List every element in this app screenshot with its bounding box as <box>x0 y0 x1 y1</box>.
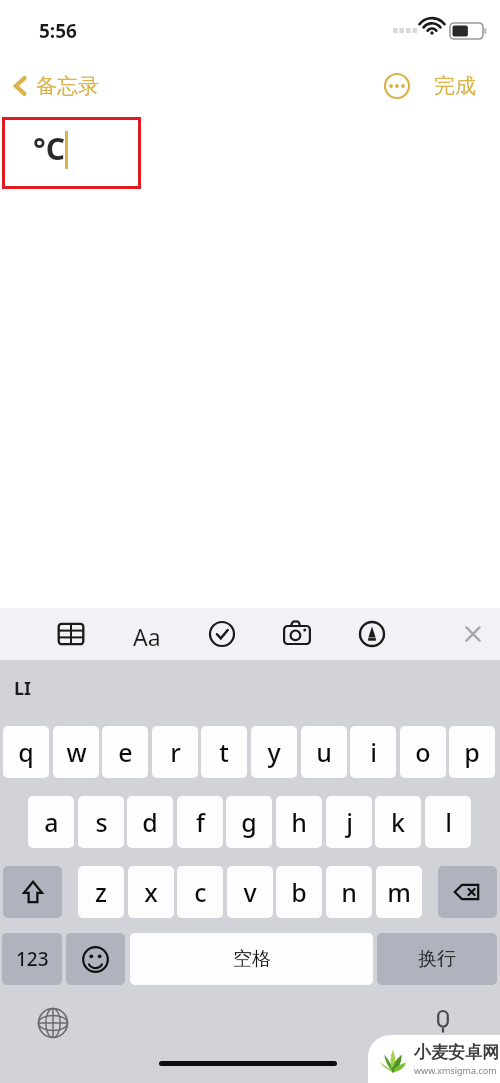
button[interactable]: Switch keyboard <box>31 1001 75 1045</box>
button[interactable]: a <box>28 796 74 848</box>
staticText: h <box>291 805 307 839</box>
staticText: 123 <box>16 946 49 972</box>
button[interactable]: k <box>375 796 421 848</box>
button[interactable]: More options <box>378 67 416 105</box>
button[interactable]: Emoji <box>66 933 125 985</box>
button[interactable]: 空格 <box>130 933 373 985</box>
staticText: c <box>194 875 207 909</box>
staticText: LI <box>14 676 32 701</box>
staticText: °C <box>33 128 65 169</box>
staticText: z <box>95 875 107 909</box>
staticText: o <box>415 735 431 769</box>
staticText: www.xmsigma.com <box>414 1064 497 1076</box>
button[interactable]: Markup <box>351 613 393 655</box>
button[interactable]: LI <box>8 668 38 709</box>
button[interactable]: w <box>53 726 99 778</box>
button[interactable]: Aa <box>125 621 169 647</box>
button[interactable]: Shift <box>3 866 62 918</box>
button[interactable]: Close keyboard <box>452 613 494 655</box>
staticText: t <box>219 735 229 769</box>
button[interactable]: l <box>425 796 471 848</box>
staticText: u <box>316 735 332 769</box>
staticText: y <box>267 735 281 769</box>
staticText: k <box>391 805 405 839</box>
staticText: x <box>144 875 158 909</box>
button[interactable]: u <box>301 726 347 778</box>
staticText: d <box>142 805 158 839</box>
staticText: 小麦安卓网 <box>414 1042 499 1063</box>
staticText: 备忘录 <box>36 73 99 99</box>
staticText: 空格 <box>233 947 271 971</box>
button[interactable]: y <box>251 726 297 778</box>
button[interactable]: s <box>78 796 124 848</box>
button[interactable]: p <box>449 726 495 778</box>
button[interactable]: 备忘录 <box>0 67 109 105</box>
button[interactable]: Backspace <box>438 866 497 918</box>
button[interactable]: h <box>276 796 322 848</box>
button[interactable]: b <box>276 866 322 918</box>
button[interactable]: 换行 <box>377 933 497 985</box>
button[interactable]: t <box>201 726 247 778</box>
staticText: e <box>118 735 133 769</box>
staticText: g <box>241 805 257 839</box>
staticText: q <box>18 735 34 769</box>
button[interactable]: f <box>177 796 223 848</box>
button[interactable]: j <box>326 796 372 848</box>
button[interactable]: v <box>227 866 273 918</box>
button[interactable]: Dictation <box>421 1001 465 1045</box>
button[interactable]: n <box>326 866 372 918</box>
button[interactable]: Camera <box>276 613 318 655</box>
staticText: n <box>341 875 357 909</box>
button[interactable]: Table <box>50 613 92 655</box>
button[interactable]: d <box>127 796 173 848</box>
staticText: j <box>346 805 353 839</box>
button[interactable]: o <box>400 726 446 778</box>
staticText: 完成 <box>434 73 476 99</box>
button[interactable]: e <box>102 726 148 778</box>
button[interactable]: x <box>128 866 174 918</box>
staticText: 5:56 <box>39 18 77 44</box>
button[interactable]: i <box>350 726 396 778</box>
button[interactable]: Text format <box>126 613 168 655</box>
button[interactable]: z <box>78 866 124 918</box>
button[interactable]: g <box>226 796 272 848</box>
staticText: Aa <box>133 621 161 647</box>
staticText: i <box>370 735 377 769</box>
staticText: m <box>387 875 411 909</box>
staticText: r <box>170 735 181 769</box>
button[interactable]: Checklist <box>201 613 243 655</box>
staticText: b <box>291 875 307 909</box>
staticText: a <box>44 805 59 839</box>
button[interactable]: r <box>152 726 198 778</box>
staticText: v <box>243 875 257 909</box>
button[interactable]: q <box>3 726 49 778</box>
staticText: f <box>196 805 205 839</box>
staticText: l <box>445 805 452 839</box>
button[interactable]: c <box>177 866 223 918</box>
staticText: w <box>66 735 87 769</box>
staticText: 换行 <box>418 947 456 971</box>
button[interactable]: m <box>376 866 422 918</box>
button[interactable]: 完成 <box>430 67 480 105</box>
staticText: p <box>464 735 480 769</box>
staticText: s <box>95 805 108 839</box>
button[interactable]: 123 <box>2 933 62 985</box>
